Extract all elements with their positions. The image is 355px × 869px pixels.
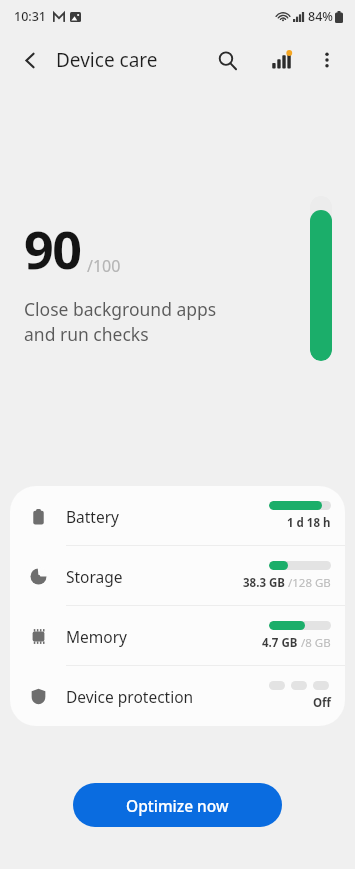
button[interactable]: Usage statistics [259, 38, 303, 82]
staticText: 38.3 GB [243, 575, 288, 591]
staticText: 1 d 18 h [287, 515, 331, 531]
button[interactable]: Battery [10, 486, 345, 546]
staticText: /100 [87, 255, 121, 277]
button[interactable]: Device protection [10, 666, 345, 726]
button[interactable]: More options [305, 38, 349, 82]
staticText: 90 [24, 213, 81, 284]
staticText: Optimize now [126, 795, 229, 816]
staticText: 84% [308, 8, 333, 25]
button[interactable]: Optimize now [73, 783, 282, 827]
button[interactable]: Storage [10, 546, 345, 606]
staticText: Memory [66, 626, 127, 647]
button[interactable]: Back [8, 38, 52, 82]
staticText: /128 GB [288, 575, 331, 591]
staticText: Device care [56, 47, 158, 73]
staticText: Storage [66, 566, 123, 587]
staticText: Battery [66, 506, 120, 527]
staticText: 10:31 [14, 8, 47, 25]
staticText: Close background apps and run checks [24, 297, 217, 346]
button[interactable]: Search [205, 38, 249, 82]
staticText: Off [313, 695, 331, 711]
button[interactable]: Memory [10, 606, 345, 666]
staticText: 4.7 GB [262, 635, 301, 651]
staticText: /8 GB [301, 635, 331, 651]
staticText: Device protection [66, 686, 194, 707]
